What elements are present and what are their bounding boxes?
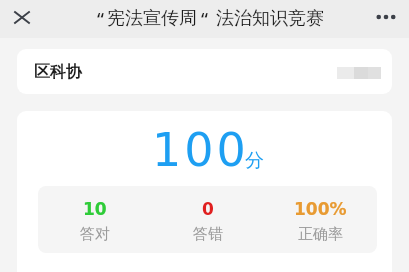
staticText: 分	[245, 149, 264, 173]
staticText: “	[97, 7, 104, 32]
staticText: 100%	[294, 199, 347, 219]
staticText: 正确率	[298, 225, 343, 244]
staticText: 法治知识竞赛	[216, 7, 324, 30]
staticText: 100	[152, 123, 249, 177]
button[interactable]: 区科协	[17, 49, 392, 94]
staticText: 宪法宣传周	[107, 7, 197, 30]
staticText: 答对	[80, 225, 110, 244]
button[interactable]: Close	[7, 4, 37, 34]
staticText: 10	[83, 199, 107, 219]
staticText: “	[201, 7, 208, 32]
button[interactable]: More options	[372, 4, 402, 34]
staticText: 0	[202, 199, 214, 219]
staticText: 答错	[193, 225, 223, 244]
staticText: 区科协	[34, 62, 82, 82]
